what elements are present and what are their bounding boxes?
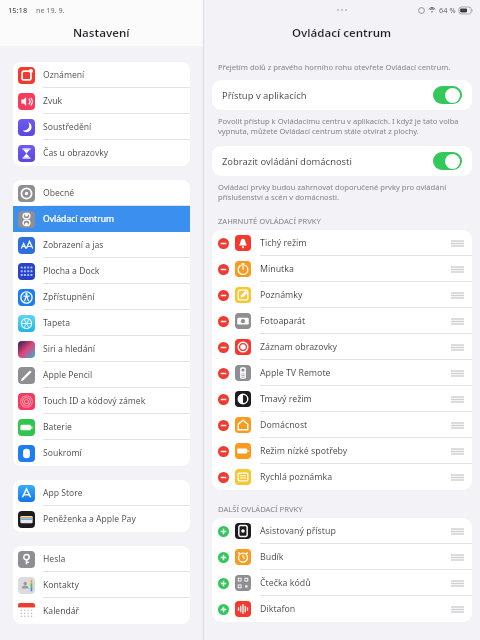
staticText: Tmavý režim bbox=[260, 393, 451, 405]
other: Přesunout bbox=[451, 421, 464, 430]
other: Přesunout bbox=[451, 239, 464, 248]
staticText: Zobrazení a jas bbox=[43, 239, 104, 251]
button[interactable]: Přidat bbox=[212, 518, 472, 544]
button[interactable]: Zobrazit ovládání domácnosti bbox=[212, 146, 472, 176]
staticText: Obecné bbox=[43, 187, 75, 199]
staticText: ne 19. 9. bbox=[36, 5, 65, 15]
staticText: Diktafon bbox=[260, 603, 451, 615]
staticText: Tichý režim bbox=[260, 237, 451, 249]
button[interactable]: Odebrat bbox=[212, 308, 472, 334]
button[interactable]: Odebrat bbox=[218, 264, 229, 275]
button[interactable]: Soustředění bbox=[13, 114, 190, 140]
staticText: Nastavení bbox=[73, 25, 130, 41]
button[interactable]: Zapnuto bbox=[433, 86, 462, 104]
staticText: Režim nízké spotřeby bbox=[260, 445, 451, 457]
button[interactable]: Touch ID a kódový zámek bbox=[13, 388, 190, 414]
button[interactable]: Odebrat bbox=[218, 290, 229, 301]
button[interactable]: Odebrat bbox=[218, 368, 229, 379]
button[interactable]: Odebrat bbox=[218, 420, 229, 431]
button[interactable]: Peněženka a Apple Pay bbox=[13, 506, 190, 532]
button[interactable]: Odebrat bbox=[212, 256, 472, 282]
staticText: Zpřístupnění bbox=[43, 291, 95, 303]
button[interactable]: Odebrat bbox=[212, 386, 472, 412]
staticText: Tapeta bbox=[43, 317, 70, 329]
other: Přesunout bbox=[451, 291, 464, 300]
other: Přesunout bbox=[451, 579, 464, 588]
button[interactable]: Zpřístupnění bbox=[13, 284, 190, 310]
button[interactable]: Přidat bbox=[218, 604, 229, 615]
button[interactable]: Zobrazení a jas bbox=[13, 232, 190, 258]
other: Přesunout bbox=[451, 369, 464, 378]
button[interactable]: Siri a hledání bbox=[13, 336, 190, 362]
button[interactable]: Přístup v aplikacích bbox=[212, 80, 472, 110]
staticText: Minutka bbox=[260, 263, 451, 275]
button[interactable]: Přidat bbox=[218, 578, 229, 589]
other: Přesunout bbox=[451, 343, 464, 352]
staticText: Poznámky bbox=[260, 289, 451, 301]
other: Přesunout bbox=[451, 265, 464, 274]
other: Přesunout bbox=[451, 447, 464, 456]
staticText: Kontakty bbox=[43, 579, 79, 591]
staticText: 64 % bbox=[439, 5, 456, 15]
staticText: Apple TV Remote bbox=[260, 367, 451, 379]
staticText: Přístup v aplikacích bbox=[222, 89, 433, 102]
button[interactable]: Přidat bbox=[212, 570, 472, 596]
button[interactable]: Odebrat bbox=[218, 446, 229, 457]
staticText: Hesla bbox=[43, 553, 66, 565]
button[interactable]: Odebrat bbox=[212, 412, 472, 438]
staticText: Zvuk bbox=[43, 95, 63, 107]
button[interactable]: Odebrat bbox=[212, 464, 472, 490]
staticText: ZAHRNUTÉ OVLÁDACÍ PRVKY bbox=[218, 216, 321, 226]
button[interactable]: Přidat bbox=[212, 544, 472, 570]
staticText: Rychlá poznámka bbox=[260, 471, 451, 483]
staticText: Zobrazit ovládání domácnosti bbox=[222, 155, 433, 168]
staticText: Fotoaparát bbox=[260, 315, 451, 327]
staticText: Peněženka a Apple Pay bbox=[43, 513, 136, 525]
button[interactable]: Tapeta bbox=[13, 310, 190, 336]
button[interactable]: Odebrat bbox=[218, 394, 229, 405]
button[interactable]: Čas u obrazovky bbox=[13, 140, 190, 166]
button[interactable]: Přidat bbox=[212, 596, 472, 622]
other: Přesunout bbox=[451, 605, 464, 614]
other: Přesunout bbox=[451, 317, 464, 326]
button[interactable]: Zvuk bbox=[13, 88, 190, 114]
button[interactable]: Soukromí bbox=[13, 440, 190, 466]
button[interactable]: Odebrat bbox=[212, 360, 472, 386]
button[interactable]: Zapnuto bbox=[433, 152, 462, 170]
button[interactable]: Odebrat bbox=[218, 238, 229, 249]
button[interactable]: Odebrat bbox=[212, 230, 472, 256]
button[interactable]: App Store bbox=[13, 480, 190, 506]
button[interactable]: Odebrat bbox=[218, 472, 229, 483]
button[interactable]: Odebrat bbox=[212, 334, 472, 360]
staticText: Kalendář bbox=[43, 605, 80, 617]
staticText: Záznam obrazovky bbox=[260, 341, 451, 353]
staticText: Oznámení bbox=[43, 69, 85, 81]
button[interactable]: Odebrat bbox=[212, 438, 472, 464]
other: Přesunout bbox=[451, 395, 464, 404]
staticText: Apple Pencil bbox=[43, 369, 93, 381]
button[interactable]: Kalendář bbox=[13, 598, 190, 624]
button[interactable]: Plocha a Dock bbox=[13, 258, 190, 284]
button[interactable]: Odebrat bbox=[218, 316, 229, 327]
staticText: Ovládací prvky budou zahrnovat doporučen… bbox=[218, 182, 466, 202]
button[interactable]: Hesla bbox=[13, 546, 190, 572]
button[interactable]: Kontakty bbox=[13, 572, 190, 598]
other: Přesunout bbox=[451, 527, 464, 536]
staticText: Přejetím dolů z pravého horního rohu ote… bbox=[218, 62, 466, 72]
staticText: Budík bbox=[260, 551, 451, 563]
staticText: DALŠÍ OVLÁDACÍ PRVKY bbox=[218, 504, 303, 514]
button[interactable]: Přidat bbox=[218, 526, 229, 537]
button[interactable]: Odebrat bbox=[212, 282, 472, 308]
button[interactable]: Obecné bbox=[13, 180, 190, 206]
button[interactable]: Baterie bbox=[13, 414, 190, 440]
button[interactable]: Apple Pencil bbox=[13, 362, 190, 388]
staticText: Soustředění bbox=[43, 121, 92, 133]
button[interactable]: Odebrat bbox=[218, 342, 229, 353]
other: Přesunout bbox=[451, 553, 464, 562]
button[interactable]: Přidat bbox=[218, 552, 229, 563]
staticText: Povolit přístup k Ovládacímu centru v ap… bbox=[218, 116, 466, 136]
staticText: Touch ID a kódový zámek bbox=[43, 395, 146, 407]
staticText: Plocha a Dock bbox=[43, 265, 100, 277]
button[interactable]: Oznámení bbox=[13, 62, 190, 88]
button[interactable]: Ovládací centrum bbox=[13, 206, 190, 232]
